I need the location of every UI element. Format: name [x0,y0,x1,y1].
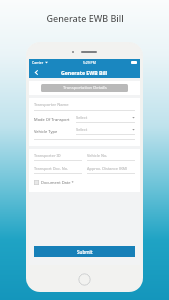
staticText: Approx. Distance (KM) [87,166,128,171]
button[interactable]: Transportation Details [41,84,128,92]
button[interactable]: Approx. Distance (KM) [87,166,135,174]
button[interactable]: Back [31,67,41,77]
staticText: Document Date * [41,180,74,185]
staticText: Select [76,127,88,132]
staticText: Vehicle No. [87,153,108,158]
staticText: Submit [77,249,93,255]
button[interactable]: Transporter ID [34,153,82,161]
staticText: Transporter Name [34,102,69,107]
staticText: Generate EWB Bill [46,12,124,24]
staticText: Generate EWB Bill [61,69,108,76]
staticText: 5:29 PM [83,60,96,65]
staticText: Mode Of Transport [34,117,76,122]
staticText: Transportation Details [63,85,107,91]
button[interactable]: Select [76,127,135,135]
button[interactable]: Select [76,115,135,123]
button[interactable]: Submit [34,246,135,257]
staticText: Select [76,115,88,120]
staticText: Carrier [32,60,44,65]
button[interactable]: Transport Doc. No. [34,166,82,174]
staticText: Transport Doc. No. [34,166,69,171]
button[interactable]: Vehicle No. [87,153,135,161]
staticText: Vehicle Type [34,129,76,134]
staticText: Transporter ID [34,153,61,158]
button[interactable]: Document Date * [34,179,74,186]
